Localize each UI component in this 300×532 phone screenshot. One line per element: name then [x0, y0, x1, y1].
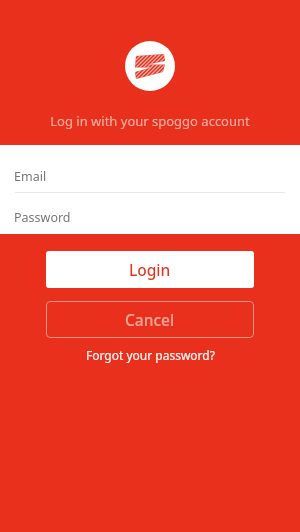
button[interactable]: Password — [0, 202, 300, 232]
staticText: Login — [129, 259, 171, 280]
button[interactable]: Forgot your password? — [76, 344, 225, 366]
staticText: Email — [14, 168, 47, 185]
staticText: Password — [14, 209, 71, 226]
staticText: Cancel — [125, 309, 175, 330]
button[interactable]: Login — [46, 251, 254, 288]
staticText: Forgot your password? — [86, 347, 215, 363]
button[interactable]: Email — [0, 160, 300, 192]
other: Spoggo logo — [125, 41, 175, 91]
button[interactable]: Cancel — [46, 301, 254, 338]
staticText: Log in with your spoggo account — [50, 112, 250, 130]
